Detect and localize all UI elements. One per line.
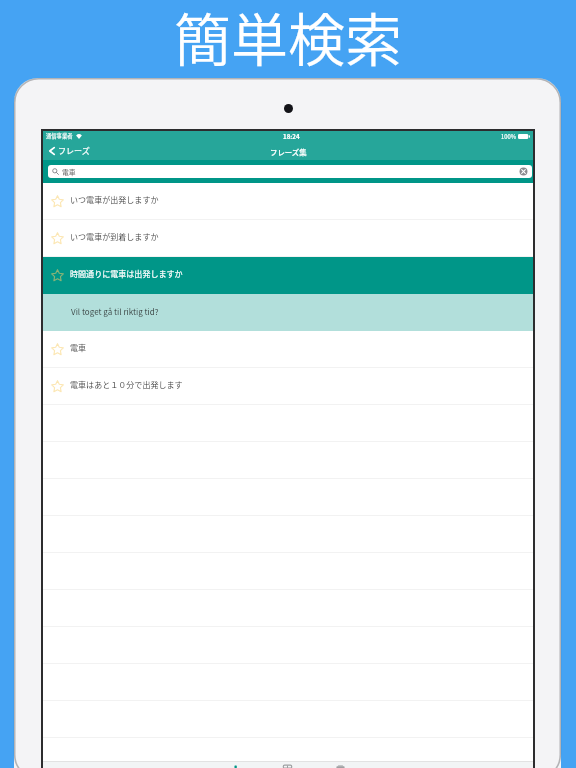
button[interactable]: 時間通りに電車は出発しますか: [43, 257, 533, 293]
staticText: いつ電車が到着しますか: [70, 231, 159, 243]
staticText: 通信事業者: [46, 132, 73, 140]
staticText: 時間通りに電車は出発しますか: [70, 268, 183, 280]
button[interactable]: 電車: [43, 331, 533, 367]
staticText: いつ電車が出発しますか: [70, 194, 159, 206]
staticText: 簡単検索: [0, 0, 576, 78]
staticText: Vil toget gå til riktig tid?: [71, 306, 159, 318]
staticText: 100%: [501, 132, 516, 140]
staticText: 電車: [70, 342, 87, 354]
button[interactable]: Phrasebook: [280, 762, 294, 768]
button[interactable]: Settings: [333, 762, 347, 768]
staticText: フレーズ集: [270, 146, 307, 157]
button[interactable]: フレーズ: [47, 143, 90, 159]
button[interactable]: 電車: [48, 165, 532, 178]
staticText: 電車: [62, 167, 76, 177]
staticText: 電車はあと１０分で出発します: [70, 379, 183, 391]
button[interactable]: Phrases: [228, 762, 242, 768]
button[interactable]: いつ電車が出発しますか: [43, 183, 533, 219]
button[interactable]: Clear search: [519, 167, 528, 176]
staticText: 18:24: [283, 132, 300, 141]
button[interactable]: Vil toget gå til riktig tid?: [43, 294, 533, 331]
button[interactable]: 電車はあと１０分で出発します: [43, 368, 533, 404]
button[interactable]: いつ電車が到着しますか: [43, 220, 533, 256]
staticText: フレーズ: [58, 145, 90, 157]
